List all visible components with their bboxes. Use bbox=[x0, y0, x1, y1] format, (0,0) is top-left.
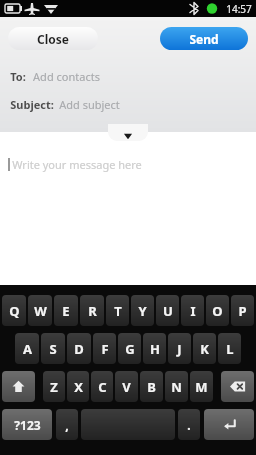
staticText: X bbox=[74, 378, 83, 396]
button[interactable]: Z bbox=[43, 371, 65, 402]
button[interactable]: N bbox=[165, 371, 188, 402]
staticText: S bbox=[49, 340, 57, 358]
staticText: . bbox=[187, 417, 191, 433]
staticText: V bbox=[122, 378, 131, 396]
staticText: F bbox=[101, 340, 109, 358]
button[interactable]: Y bbox=[131, 295, 154, 326]
staticText: M bbox=[195, 378, 208, 396]
button[interactable]: G bbox=[118, 333, 141, 364]
staticText: D bbox=[74, 340, 84, 358]
staticText: Y bbox=[138, 302, 147, 320]
staticText: E bbox=[62, 302, 70, 320]
staticText: Add contacts bbox=[33, 69, 100, 84]
button[interactable]: . bbox=[178, 409, 200, 440]
staticText: , bbox=[65, 417, 69, 433]
button[interactable]: C bbox=[91, 371, 113, 402]
button[interactable]: H bbox=[143, 333, 166, 364]
button[interactable]: R bbox=[80, 295, 104, 326]
button[interactable] bbox=[81, 409, 175, 440]
button[interactable]: , bbox=[56, 409, 78, 440]
button[interactable]: To: bbox=[10, 63, 256, 89]
staticText: Add subject bbox=[59, 97, 120, 112]
staticText: I bbox=[190, 302, 196, 320]
staticText: Write your message here bbox=[12, 157, 142, 172]
button[interactable]: Send bbox=[160, 27, 248, 50]
button[interactable]: Q bbox=[2, 295, 26, 326]
button[interactable]: X bbox=[67, 371, 89, 402]
button[interactable]: P bbox=[231, 295, 254, 326]
button[interactable]: W bbox=[28, 295, 52, 326]
button[interactable]: J bbox=[168, 333, 191, 364]
staticText: Z bbox=[50, 378, 58, 396]
staticText: ?123 bbox=[14, 417, 41, 433]
button[interactable]: V bbox=[115, 371, 138, 402]
staticText: Close bbox=[37, 31, 69, 47]
staticText: P bbox=[238, 302, 247, 320]
button[interactable]: Backspace bbox=[221, 371, 254, 402]
button[interactable]: F bbox=[93, 333, 116, 364]
button[interactable]: M bbox=[190, 371, 213, 402]
button[interactable]: E bbox=[54, 295, 78, 326]
staticText: To: bbox=[10, 69, 26, 84]
button[interactable]: Enter bbox=[204, 409, 254, 440]
staticText: C bbox=[98, 378, 107, 396]
button[interactable]: T bbox=[106, 295, 129, 326]
staticText: Q bbox=[9, 302, 20, 320]
staticText: 14:57 bbox=[226, 2, 252, 16]
staticText: H bbox=[150, 340, 160, 358]
button[interactable]: ?123 bbox=[2, 409, 52, 440]
button[interactable]: A bbox=[15, 333, 39, 364]
staticText: U bbox=[163, 302, 173, 320]
staticText: Send bbox=[189, 31, 219, 47]
staticText: J bbox=[177, 340, 182, 358]
button[interactable]: B bbox=[140, 371, 163, 402]
staticText: R bbox=[88, 302, 97, 320]
staticText: B bbox=[147, 378, 156, 396]
button[interactable]: D bbox=[67, 333, 91, 364]
staticText: A bbox=[23, 340, 32, 358]
staticText: N bbox=[171, 378, 182, 396]
button[interactable]: Write your message here bbox=[0, 149, 256, 285]
staticText: Subject: bbox=[10, 97, 54, 112]
button[interactable]: Subject: bbox=[10, 91, 256, 117]
staticText: K bbox=[200, 340, 209, 358]
button[interactable]: I bbox=[181, 295, 204, 326]
button[interactable]: U bbox=[156, 295, 179, 326]
button[interactable]: Expand header bbox=[108, 124, 148, 141]
button[interactable]: O bbox=[206, 295, 229, 326]
button[interactable]: K bbox=[193, 333, 216, 364]
button[interactable]: S bbox=[41, 333, 65, 364]
button[interactable]: Close bbox=[8, 27, 98, 50]
button[interactable]: L bbox=[218, 333, 241, 364]
staticText: L bbox=[226, 340, 234, 358]
staticText: O bbox=[212, 302, 223, 320]
staticText: W bbox=[34, 302, 47, 320]
staticText: G bbox=[125, 340, 135, 358]
button[interactable]: Shift bbox=[2, 371, 35, 402]
staticText: T bbox=[114, 302, 122, 320]
